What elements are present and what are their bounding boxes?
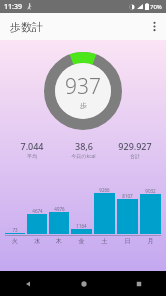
staticText: 平均 [27, 153, 37, 159]
staticText: 929.927 [118, 140, 152, 152]
staticText: 月 [140, 237, 161, 245]
button[interactable]: 4976 [49, 206, 69, 234]
staticText: 11:39 [4, 2, 22, 12]
button[interactable]: 8107 [117, 193, 138, 234]
staticText: 歩 [80, 101, 87, 110]
button[interactable]: Step progress [44, 52, 122, 130]
staticText: 合計 [130, 153, 140, 159]
staticText: 4674 [32, 208, 43, 214]
staticText: 9032 [145, 188, 156, 194]
staticText: 70% [150, 3, 162, 11]
staticText: 73 [12, 227, 18, 233]
button[interactable]: 73 [5, 227, 25, 234]
button[interactable]: 929.927 [109, 140, 160, 159]
button[interactable]: 1164 [71, 223, 92, 234]
button[interactable]: 9266 [94, 187, 115, 234]
button[interactable]: Back [0, 271, 56, 296]
staticText: 水 [27, 237, 47, 245]
button[interactable]: Recents [111, 271, 166, 296]
button[interactable]: More options [142, 13, 166, 40]
button[interactable]: 38,6 [58, 140, 109, 160]
staticText: 日 [117, 237, 138, 245]
staticText: 1164 [76, 223, 87, 229]
button[interactable]: Home [56, 271, 111, 296]
staticText: 38,6 [75, 140, 93, 152]
staticText: 土 [94, 237, 115, 245]
staticText: 7.044 [20, 140, 44, 152]
staticText: 今日のkcal [71, 153, 96, 160]
button[interactable]: 9032 [140, 188, 161, 234]
staticText: 歩数計 [10, 20, 43, 34]
button[interactable]: 7.044 [6, 140, 58, 159]
staticText: 金 [71, 237, 92, 245]
button[interactable]: 4674 [27, 208, 47, 234]
staticText: 937 [65, 72, 101, 101]
staticText: 9266 [99, 187, 110, 193]
staticText: 4976 [54, 206, 65, 212]
staticText: 木 [49, 237, 69, 245]
staticText: 8107 [122, 193, 133, 199]
staticText: 火 [5, 237, 25, 245]
